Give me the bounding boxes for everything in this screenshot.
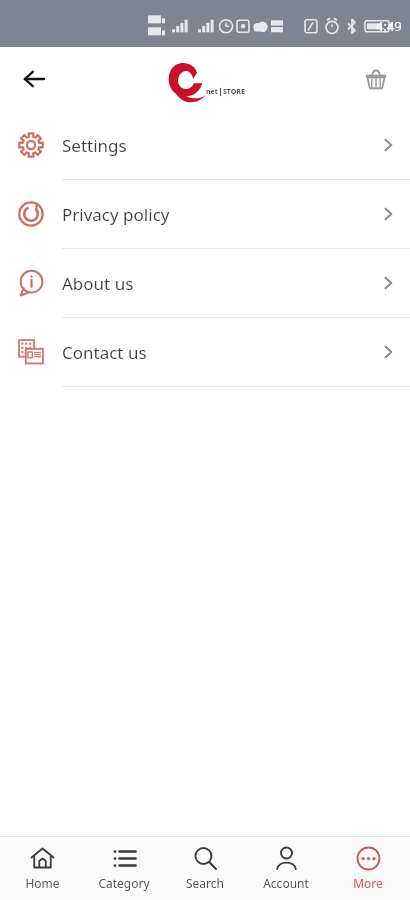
staticText: About us	[62, 272, 366, 295]
button[interactable]: Category	[85, 837, 163, 900]
button[interactable]: Search	[166, 837, 244, 900]
button[interactable]: Contact us	[0, 318, 410, 386]
staticText: Contact us	[62, 341, 366, 364]
staticText: Category	[98, 875, 150, 891]
staticText: Privacy policy	[62, 203, 366, 226]
staticText: Settings	[62, 134, 366, 157]
button[interactable]: More	[329, 837, 407, 900]
staticText: More	[353, 875, 383, 891]
staticText: Home	[25, 875, 60, 891]
button[interactable]: Privacy policy	[0, 180, 410, 248]
button[interactable]: Home	[3, 837, 81, 900]
staticText: Account	[263, 875, 309, 891]
staticText: net	[206, 87, 218, 97]
button[interactable]: Account	[247, 837, 325, 900]
staticText: Search	[186, 875, 224, 891]
button[interactable]: Cart	[354, 57, 398, 101]
button[interactable]: Settings	[0, 111, 410, 179]
button[interactable]: Back	[12, 57, 56, 101]
staticText: 4:49	[376, 17, 402, 35]
button[interactable]: About us	[0, 249, 410, 317]
staticText: STORE	[223, 87, 245, 97]
